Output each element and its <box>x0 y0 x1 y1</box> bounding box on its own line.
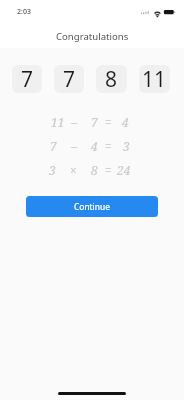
staticText: 3 <box>49 162 56 178</box>
button[interactable]: 7 <box>12 65 42 93</box>
staticText: 7 <box>21 65 34 93</box>
staticText: Congratulations <box>56 30 129 42</box>
staticText: 11 <box>51 114 65 130</box>
staticText: 2:03 <box>17 7 31 17</box>
staticText: 11 <box>142 65 167 93</box>
staticText: 3 <box>123 138 130 154</box>
staticText: 24 <box>117 162 131 178</box>
button[interactable]: 8 <box>96 65 127 93</box>
staticText: 8 <box>91 162 98 178</box>
staticText: = <box>105 138 112 154</box>
staticText: 8 <box>105 65 118 93</box>
button[interactable]: 7 <box>54 65 84 93</box>
staticText: × <box>70 162 77 178</box>
staticText: 7 <box>63 65 76 93</box>
staticText: 4 <box>122 114 129 130</box>
staticText: – <box>71 138 78 154</box>
button[interactable]: Continue <box>26 196 158 217</box>
staticText: 4 <box>91 138 98 154</box>
staticText: = <box>105 162 112 178</box>
button[interactable]: 11 <box>139 65 170 93</box>
staticText: Continue <box>74 201 110 212</box>
staticText: – <box>71 114 78 130</box>
staticText: = <box>105 114 112 130</box>
staticText: 7 <box>91 114 98 130</box>
staticText: 7 <box>50 138 57 154</box>
